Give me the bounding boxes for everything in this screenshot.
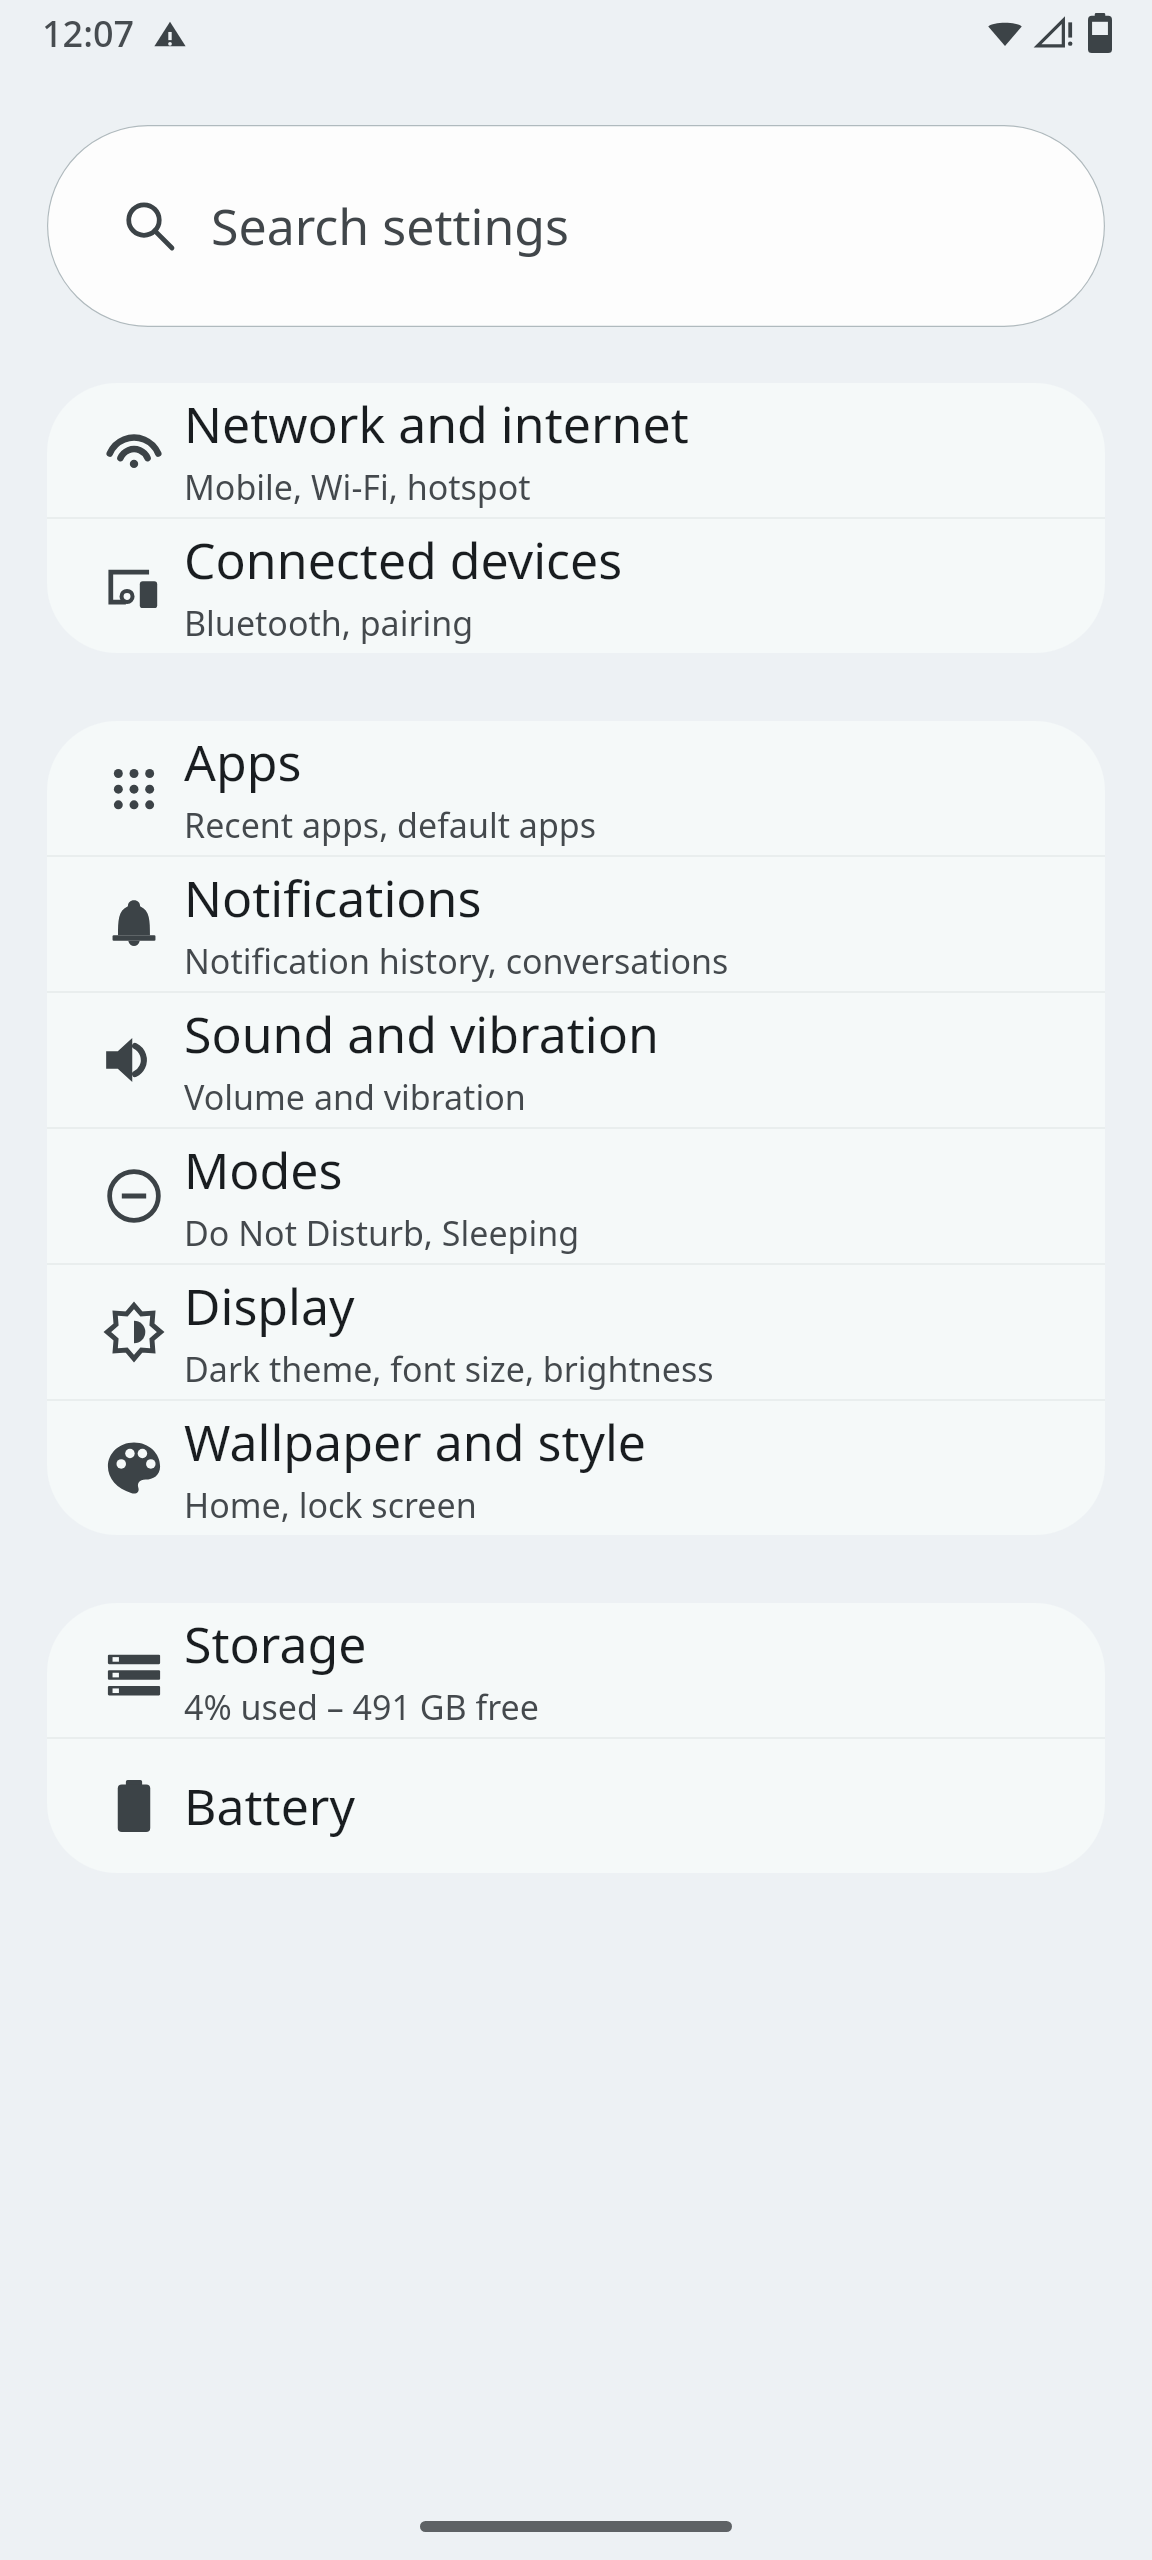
staticText: Connected devices: [184, 526, 623, 594]
staticText: Recent apps, default apps: [184, 802, 597, 848]
staticText: Notifications: [184, 864, 482, 932]
staticText: Battery: [184, 1772, 355, 1840]
staticText: Wallpaper and style: [184, 1408, 647, 1476]
staticText: Mobile, Wi-Fi, hotspot: [184, 464, 531, 510]
button[interactable]: Connected devices: [47, 519, 1105, 653]
staticText: Dark theme, font size, brightness: [184, 1346, 714, 1392]
button[interactable]: Search settings: [47, 125, 1105, 327]
button[interactable]: Battery: [47, 1739, 1105, 1873]
staticText: Notification history, conversations: [184, 938, 729, 984]
staticText: 4% used – 491 GB free: [184, 1684, 539, 1730]
staticText: Storage: [184, 1610, 367, 1678]
staticText: Network and internet: [184, 390, 689, 458]
button[interactable]: Display: [47, 1265, 1105, 1399]
staticText: Sound and vibration: [184, 1000, 659, 1068]
staticText: Display: [184, 1272, 355, 1340]
button[interactable]: Network and internet: [47, 383, 1105, 517]
button[interactable]: Sound and vibration: [47, 993, 1105, 1127]
button[interactable]: Wallpaper and style: [47, 1401, 1105, 1535]
button[interactable]: Storage: [47, 1603, 1105, 1737]
staticText: Home, lock screen: [184, 1482, 477, 1528]
staticText: Volume and vibration: [184, 1074, 526, 1120]
button[interactable]: Modes: [47, 1129, 1105, 1263]
staticText: Apps: [184, 728, 302, 796]
staticText: Bluetooth, pairing: [184, 600, 474, 646]
button[interactable]: Notifications: [47, 857, 1105, 991]
staticText: 12:07: [42, 9, 135, 58]
staticText: Do Not Disturb, Sleeping: [184, 1210, 580, 1256]
button[interactable]: Apps: [47, 721, 1105, 855]
staticText: Search settings: [211, 192, 569, 260]
staticText: Modes: [184, 1136, 343, 1204]
